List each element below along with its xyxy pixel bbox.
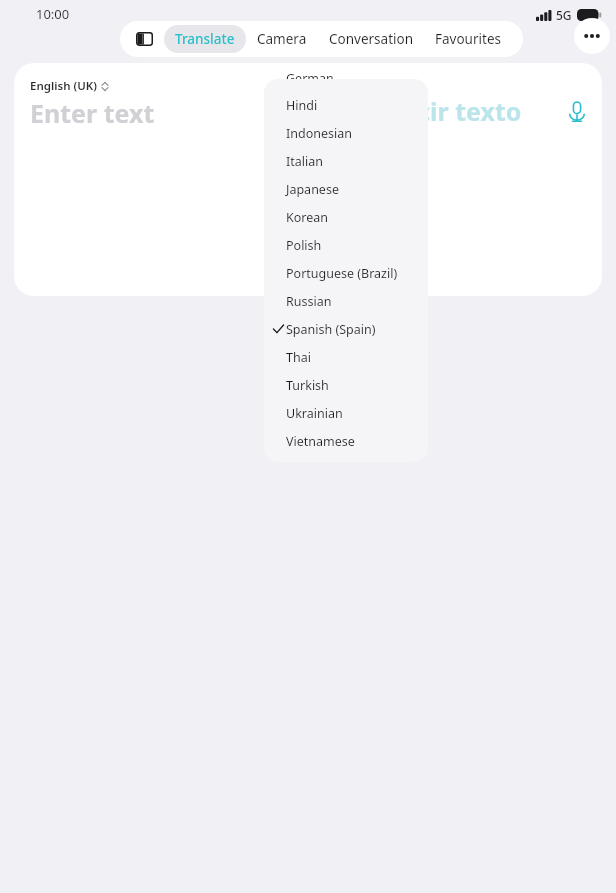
staticText: Vietnamese bbox=[286, 433, 355, 450]
button[interactable]: Translate bbox=[164, 25, 246, 53]
button[interactable]: Hindi bbox=[264, 91, 428, 119]
staticText: Camera bbox=[257, 30, 307, 48]
button[interactable]: Ukrainian bbox=[264, 399, 428, 427]
staticText: Italian bbox=[286, 153, 323, 170]
button[interactable]: Camera bbox=[246, 25, 318, 53]
button[interactable]: Indonesian bbox=[264, 119, 428, 147]
button[interactable]: Introducir texto bbox=[308, 63, 602, 296]
staticText: Introducir texto bbox=[322, 94, 522, 128]
button[interactable]: Conversation bbox=[318, 25, 424, 53]
button[interactable]: Japanese bbox=[264, 175, 428, 203]
staticText: Turkish bbox=[286, 377, 329, 394]
staticText: English (UK) bbox=[30, 78, 97, 94]
staticText: Portuguese (Brazil) bbox=[286, 265, 398, 282]
button[interactable]: Thai bbox=[264, 343, 428, 371]
button[interactable]: Korean bbox=[264, 203, 428, 231]
staticText: Translate bbox=[175, 30, 235, 48]
button[interactable]: Speak source language bbox=[260, 96, 290, 126]
staticText: Spanish (Spain) bbox=[286, 321, 376, 338]
staticText: Favourites bbox=[435, 30, 501, 48]
button[interactable]: Polish bbox=[264, 231, 428, 259]
button[interactable]: Russian bbox=[264, 287, 428, 315]
button[interactable]: Speak target language bbox=[562, 96, 592, 126]
button[interactable]: More options bbox=[574, 18, 610, 54]
staticText: 5G bbox=[556, 7, 572, 23]
staticText: Korean bbox=[286, 209, 329, 226]
staticText: 10:00 bbox=[36, 5, 70, 23]
staticText: Conversation bbox=[329, 30, 413, 48]
staticText: Indonesian bbox=[286, 125, 352, 142]
button[interactable]: English (UK) bbox=[14, 63, 308, 296]
staticText: Polish bbox=[286, 237, 322, 254]
button[interactable]: Spanish (Spain) bbox=[264, 315, 428, 343]
button[interactable]: Vietnamese bbox=[264, 427, 428, 455]
staticText: Ukrainian bbox=[286, 405, 343, 422]
button[interactable]: Turkish bbox=[264, 371, 428, 399]
staticText: German bbox=[286, 70, 334, 79]
button[interactable]: German bbox=[264, 70, 428, 79]
button[interactable]: Portuguese (Brazil) bbox=[264, 259, 428, 287]
staticText: Thai bbox=[286, 349, 311, 366]
staticText: Enter text bbox=[30, 96, 155, 130]
staticText: Japanese bbox=[286, 181, 339, 198]
button[interactable]: Show sidebar bbox=[129, 24, 159, 54]
button[interactable]: Italian bbox=[264, 147, 428, 175]
staticText: Hindi bbox=[286, 97, 318, 114]
staticText: Russian bbox=[286, 293, 332, 310]
button[interactable]: Favourites bbox=[424, 25, 512, 53]
